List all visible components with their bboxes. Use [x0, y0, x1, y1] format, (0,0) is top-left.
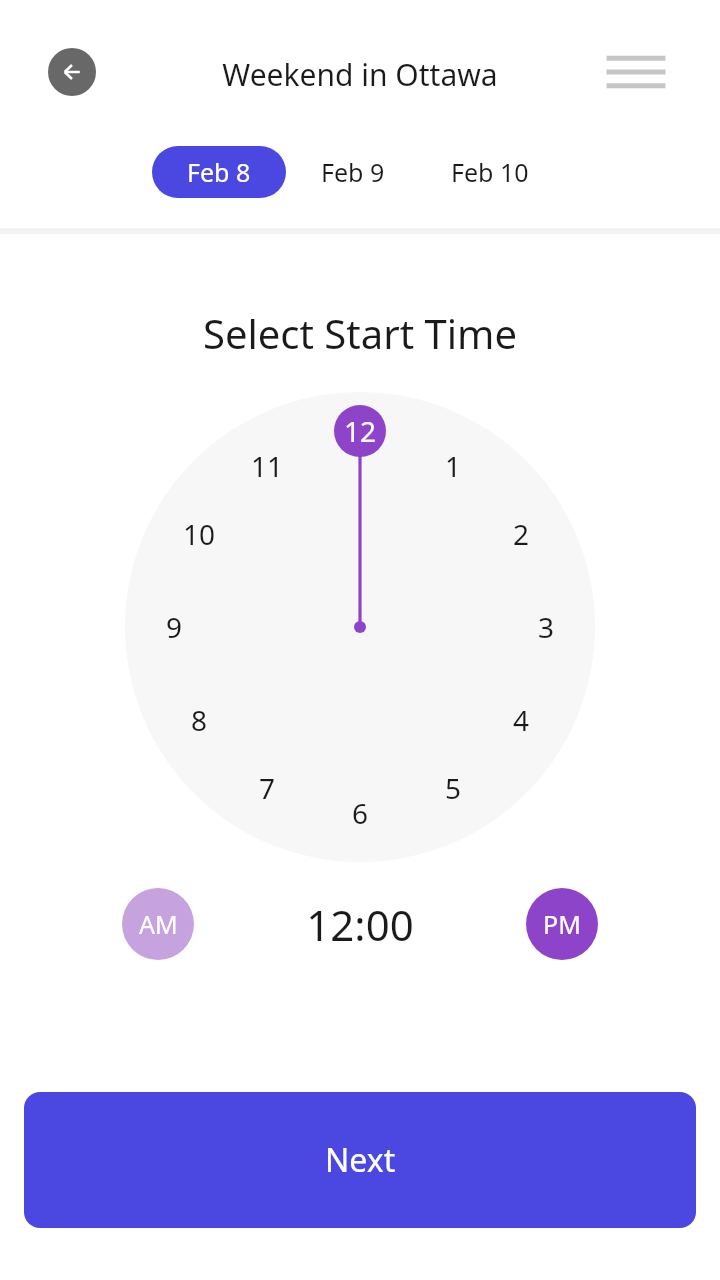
- button[interactable]: Feb 9: [286, 146, 420, 198]
- staticText: 2: [513, 515, 530, 553]
- button[interactable]: 12: [334, 405, 386, 457]
- staticText: Weekend in Ottawa: [0, 54, 720, 95]
- staticText: 9: [166, 608, 183, 646]
- button[interactable]: Feb 8: [152, 146, 286, 198]
- button[interactable]: Menu: [608, 44, 664, 100]
- staticText: 8: [191, 701, 208, 739]
- staticText: 1: [445, 447, 462, 485]
- staticText: PM: [543, 907, 581, 941]
- staticText: Feb 10: [451, 155, 529, 189]
- staticText: Select Start Time: [0, 306, 720, 360]
- button[interactable]: Next: [24, 1092, 696, 1228]
- staticText: 12:00: [0, 896, 720, 953]
- staticText: 4: [513, 701, 530, 739]
- staticText: 12: [344, 412, 377, 450]
- button[interactable]: AM: [122, 888, 194, 960]
- button[interactable]: PM: [526, 888, 598, 960]
- button[interactable]: Back: [48, 48, 96, 96]
- staticText: Feb 9: [321, 155, 385, 189]
- staticText: Feb 8: [187, 155, 251, 189]
- staticText: 3: [538, 608, 555, 646]
- staticText: AM: [139, 907, 178, 941]
- staticText: 5: [445, 769, 462, 807]
- staticText: Next: [325, 1138, 396, 1182]
- staticText: 10: [183, 515, 216, 553]
- staticText: 6: [352, 794, 369, 832]
- button[interactable]: Feb 10: [420, 146, 560, 198]
- staticText: 11: [251, 447, 284, 485]
- staticText: 7: [259, 769, 276, 807]
